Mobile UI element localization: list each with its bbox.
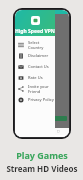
button[interactable]: Invite your Friend (15, 83, 55, 94)
button[interactable]: Select Country (15, 39, 55, 50)
button[interactable] (53, 116, 67, 121)
staticText: High Speed VPN (15, 28, 55, 35)
staticText: Play Games (16, 149, 68, 161)
staticText: Privacy Policy (28, 97, 54, 102)
button[interactable]: Rate Us (15, 72, 55, 83)
staticText: Stream HD Videos (6, 163, 78, 174)
button[interactable]: Privacy Policy (15, 94, 55, 105)
staticText: Select Country (28, 40, 55, 50)
staticText: PREMIUM (17, 26, 37, 31)
staticText: Contact Us (28, 64, 49, 69)
staticText: Disclaimer (28, 53, 49, 58)
button[interactable]: High Speed VPN (15, 10, 55, 36)
button[interactable]: Contact Us (15, 61, 55, 72)
staticText: Invite your Friend (28, 84, 55, 94)
button[interactable]: Disclaimer (15, 50, 55, 61)
staticText: Rate Us (28, 75, 43, 80)
